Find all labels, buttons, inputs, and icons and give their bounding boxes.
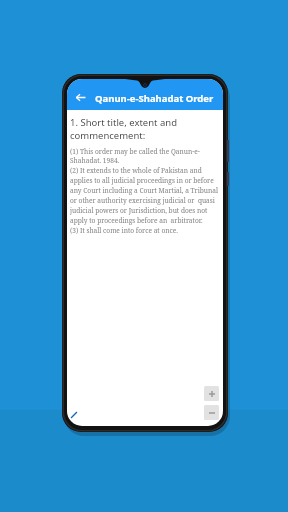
button[interactable]: Zoom out bbox=[204, 405, 219, 420]
staticText: 1. Short title, extent and commencement: bbox=[70, 116, 220, 142]
staticText: Qanun-e-Shahadat Order bbox=[95, 92, 214, 105]
staticText: (1) This order may be called the Qanun-e… bbox=[70, 147, 220, 235]
button[interactable]: Back bbox=[71, 88, 89, 106]
button[interactable]: Zoom in bbox=[204, 386, 219, 401]
